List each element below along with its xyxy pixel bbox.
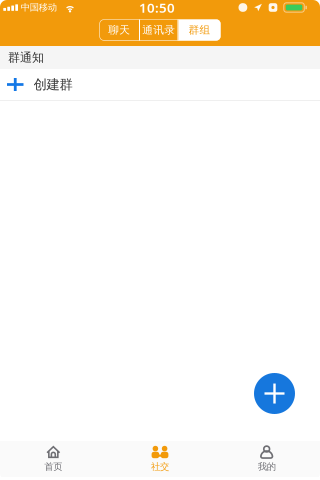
staticText: 中国移动 bbox=[21, 2, 57, 13]
staticText: 创建群 bbox=[33, 76, 72, 93]
button[interactable]: 社交 bbox=[107, 441, 213, 477]
button[interactable]: 创建群 bbox=[0, 69, 320, 100]
button[interactable]: New group bbox=[254, 373, 295, 414]
staticText: 通讯录 bbox=[142, 23, 175, 36]
button[interactable]: 我的 bbox=[213, 441, 320, 477]
staticText: 10:50 bbox=[139, 0, 175, 16]
staticText: 群组 bbox=[188, 23, 210, 36]
staticText: 社交 bbox=[151, 461, 169, 472]
button[interactable]: 群组 bbox=[178, 19, 220, 40]
button[interactable]: 聊天 bbox=[99, 19, 139, 40]
staticText: 我的 bbox=[258, 461, 276, 472]
staticText: 首页 bbox=[44, 461, 62, 472]
button[interactable]: 通讯录 bbox=[140, 19, 177, 40]
button[interactable]: 首页 bbox=[0, 441, 107, 477]
staticText: 群通知 bbox=[8, 50, 44, 65]
staticText: 聊天 bbox=[108, 23, 130, 36]
